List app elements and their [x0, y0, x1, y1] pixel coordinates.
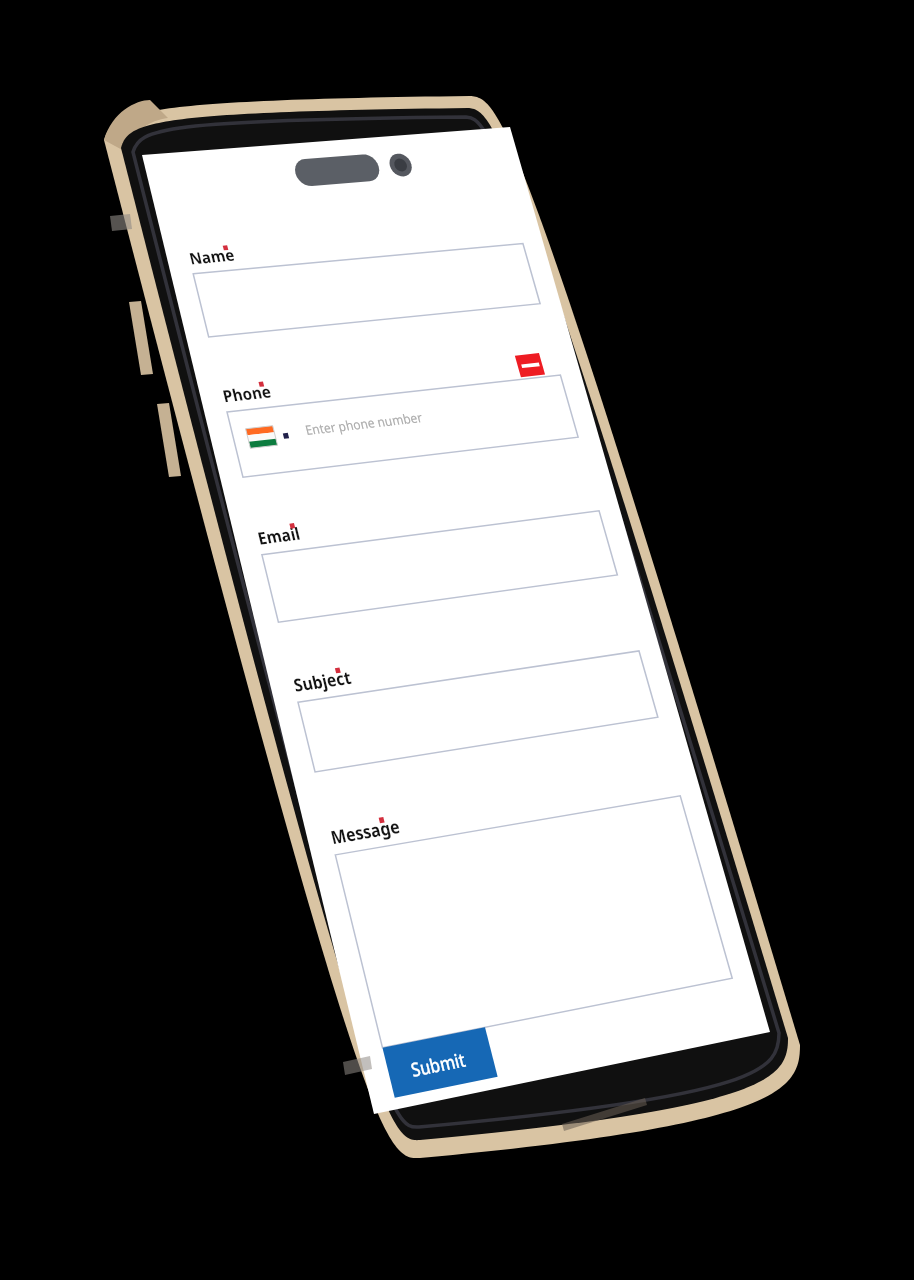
button[interactable]: Contact form displayed on a phone mockup	[0, 0, 914, 1280]
